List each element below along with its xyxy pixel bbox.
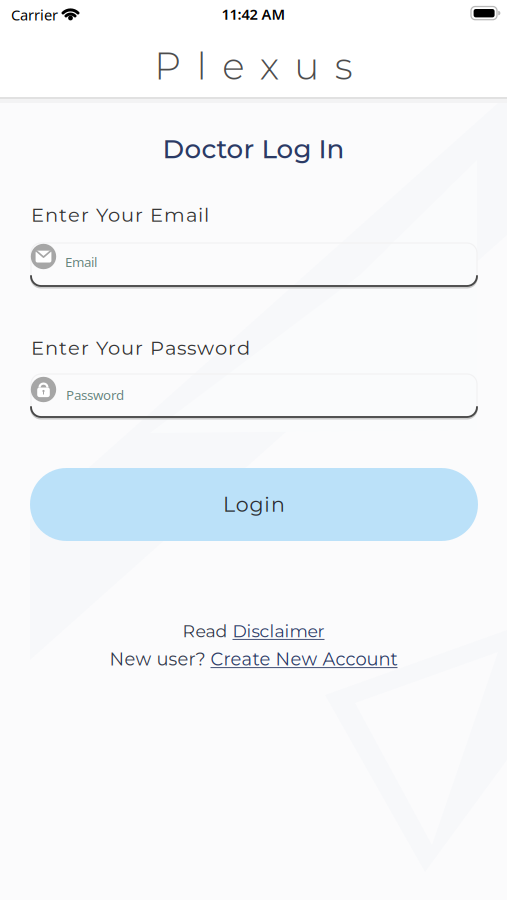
staticText: Plexus [154, 43, 353, 89]
staticText: Doctor Log In [162, 133, 344, 165]
staticText: New user? [109, 648, 210, 670]
button[interactable]: New user? [109, 648, 397, 670]
staticText: Login [223, 492, 285, 517]
staticText: Disclaimer [232, 620, 324, 641]
staticText: Create New Account [210, 648, 397, 670]
button[interactable]: Login [30, 468, 478, 541]
staticText: Enter Your Email [31, 203, 209, 227]
button[interactable]: Password [31, 374, 477, 417]
staticText: Carrier [11, 5, 58, 24]
button[interactable]: Read [182, 620, 324, 641]
staticText: 11:42 AM [221, 4, 285, 24]
staticText: Password [66, 386, 124, 404]
staticText: Email [65, 253, 97, 271]
button[interactable]: Email [31, 243, 477, 286]
staticText: Read [182, 620, 232, 641]
staticText: Enter Your Password [31, 336, 250, 360]
